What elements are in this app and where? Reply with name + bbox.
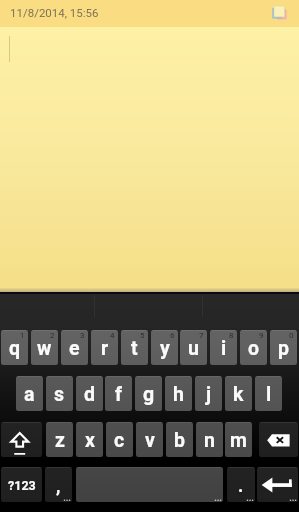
staticText: . (238, 475, 244, 496)
staticText: 8 (229, 331, 234, 340)
staticText: s (54, 383, 65, 406)
staticText: p (278, 337, 289, 360)
staticText: l (266, 383, 272, 406)
button[interactable]: p (270, 330, 297, 365)
staticText: u (188, 337, 199, 360)
button[interactable]: e (61, 330, 88, 365)
staticText: 2 (50, 331, 55, 340)
button[interactable]: q (1, 330, 28, 365)
staticText: r (101, 337, 109, 360)
button[interactable]: f (105, 376, 132, 411)
staticText: a (24, 383, 35, 406)
staticText: 1 (20, 331, 25, 340)
button[interactable]: g (135, 376, 162, 411)
button[interactable]: o (240, 330, 267, 365)
staticText: 7 (199, 331, 204, 340)
staticText: v (145, 429, 155, 452)
staticText: 6 (170, 331, 175, 340)
button[interactable]: h (165, 376, 192, 411)
staticText: c (114, 429, 125, 452)
staticText: , (56, 475, 61, 496)
button[interactable]: . (227, 467, 255, 502)
button[interactable]: w (31, 330, 58, 365)
button[interactable]: Shift (1, 422, 42, 457)
staticText: w (37, 337, 52, 360)
staticText: 11/8/2014, 15:56 (10, 6, 99, 19)
button[interactable]: r (91, 330, 118, 365)
staticText: d (84, 383, 95, 406)
staticText: 9 (259, 331, 264, 340)
staticText: i (221, 337, 227, 360)
button[interactable]: z (46, 422, 73, 457)
staticText: x (85, 429, 95, 452)
staticText: n (204, 429, 215, 452)
staticText: q (9, 337, 21, 360)
button[interactable]: Space (76, 467, 223, 502)
staticText: h (173, 383, 184, 406)
button[interactable]: c (106, 422, 133, 457)
staticText: k (233, 383, 244, 406)
staticText: t (131, 337, 138, 360)
staticText: o (248, 337, 260, 360)
staticText: f (115, 383, 122, 406)
button[interactable]: a (16, 376, 43, 411)
button[interactable]: y (151, 330, 178, 365)
staticText: z (55, 429, 65, 452)
staticText: m (230, 429, 247, 452)
button[interactable]: d (76, 376, 103, 411)
button[interactable]: n (196, 422, 223, 457)
staticText: 0 (289, 331, 294, 340)
button[interactable]: j (195, 376, 222, 411)
staticText: j (206, 383, 212, 406)
button[interactable]: ?123 (1, 467, 42, 502)
button[interactable]: b (166, 422, 193, 457)
button[interactable]: , (45, 467, 72, 502)
button[interactable]: k (225, 376, 252, 411)
staticText: y (160, 337, 170, 360)
button[interactable]: i (210, 330, 237, 365)
staticText: ?123 (8, 478, 36, 493)
button[interactable]: All notes (270, 2, 290, 22)
button[interactable]: t (121, 330, 148, 365)
staticText: 5 (140, 331, 145, 340)
staticText: 4 (110, 331, 115, 340)
button[interactable]: l (255, 376, 282, 411)
button[interactable]: x (76, 422, 103, 457)
button[interactable]: m (225, 422, 252, 457)
staticText: g (143, 383, 155, 406)
button[interactable]: Enter (257, 467, 298, 502)
staticText: e (69, 337, 80, 360)
staticText: 3 (80, 331, 85, 340)
button[interactable]: Backspace (259, 422, 298, 457)
staticText: b (174, 429, 185, 452)
button[interactable]: v (136, 422, 163, 457)
button[interactable]: u (180, 330, 207, 365)
button[interactable]: s (46, 376, 73, 411)
